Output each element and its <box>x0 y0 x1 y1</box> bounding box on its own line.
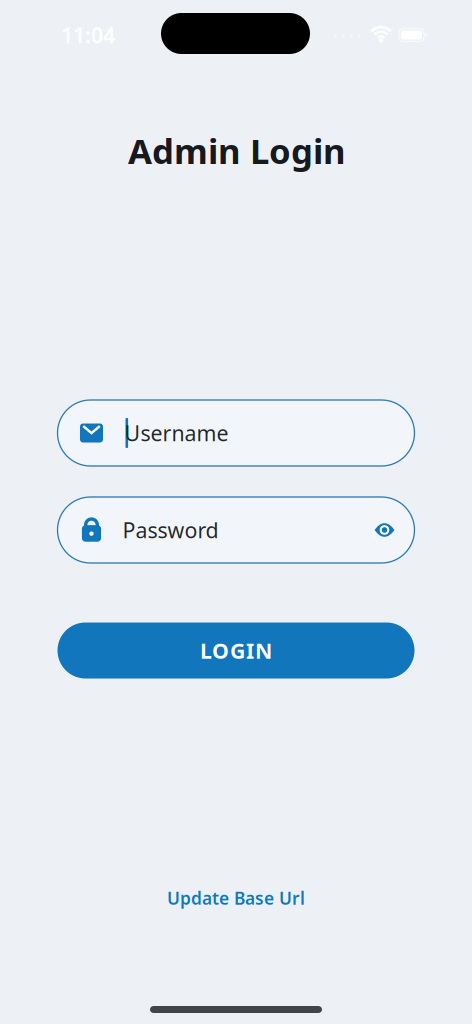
staticText: Password <box>122 516 218 544</box>
button[interactable]: Username <box>57 400 414 466</box>
button[interactable]: LOGIN <box>57 622 414 678</box>
button[interactable]: Show password <box>364 510 404 550</box>
staticText: 11:04 <box>61 21 115 49</box>
staticText: LOGIN <box>200 636 272 665</box>
button[interactable]: Password <box>57 497 414 563</box>
button[interactable]: Update Base Url <box>157 880 315 915</box>
staticText: Update Base Url <box>167 886 305 909</box>
staticText: Username <box>124 419 228 447</box>
staticText: Admin Login <box>128 127 346 173</box>
